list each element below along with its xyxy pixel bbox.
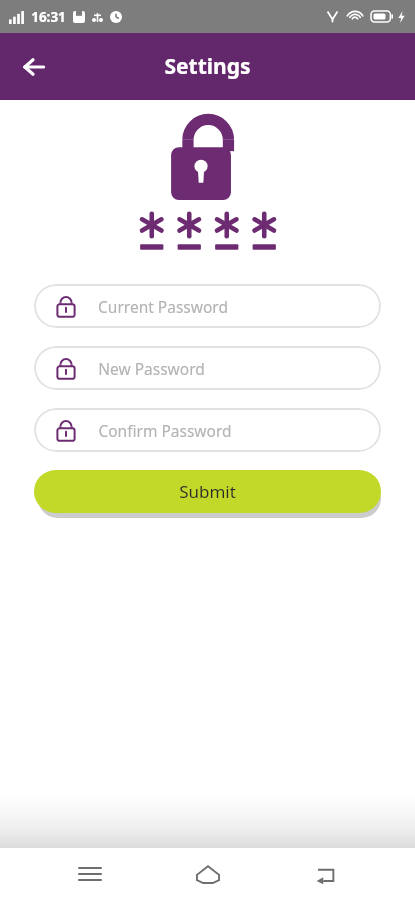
- button[interactable]: Current Password: [34, 284, 381, 328]
- staticText: Confirm Password: [98, 420, 232, 441]
- button[interactable]: Back: [12, 45, 56, 89]
- button[interactable]: New Password: [34, 346, 381, 390]
- staticText: Current Password: [98, 296, 228, 317]
- staticText: 16:31: [31, 8, 66, 26]
- staticText: Settings: [164, 52, 251, 81]
- button[interactable]: Confirm Password: [34, 408, 381, 452]
- staticText: Submit: [179, 480, 236, 503]
- button[interactable]: Back: [297, 848, 353, 900]
- button[interactable]: Recent apps: [62, 848, 118, 900]
- staticText: New Password: [98, 358, 205, 379]
- button[interactable]: Home: [180, 848, 236, 900]
- button[interactable]: Submit: [34, 470, 381, 513]
